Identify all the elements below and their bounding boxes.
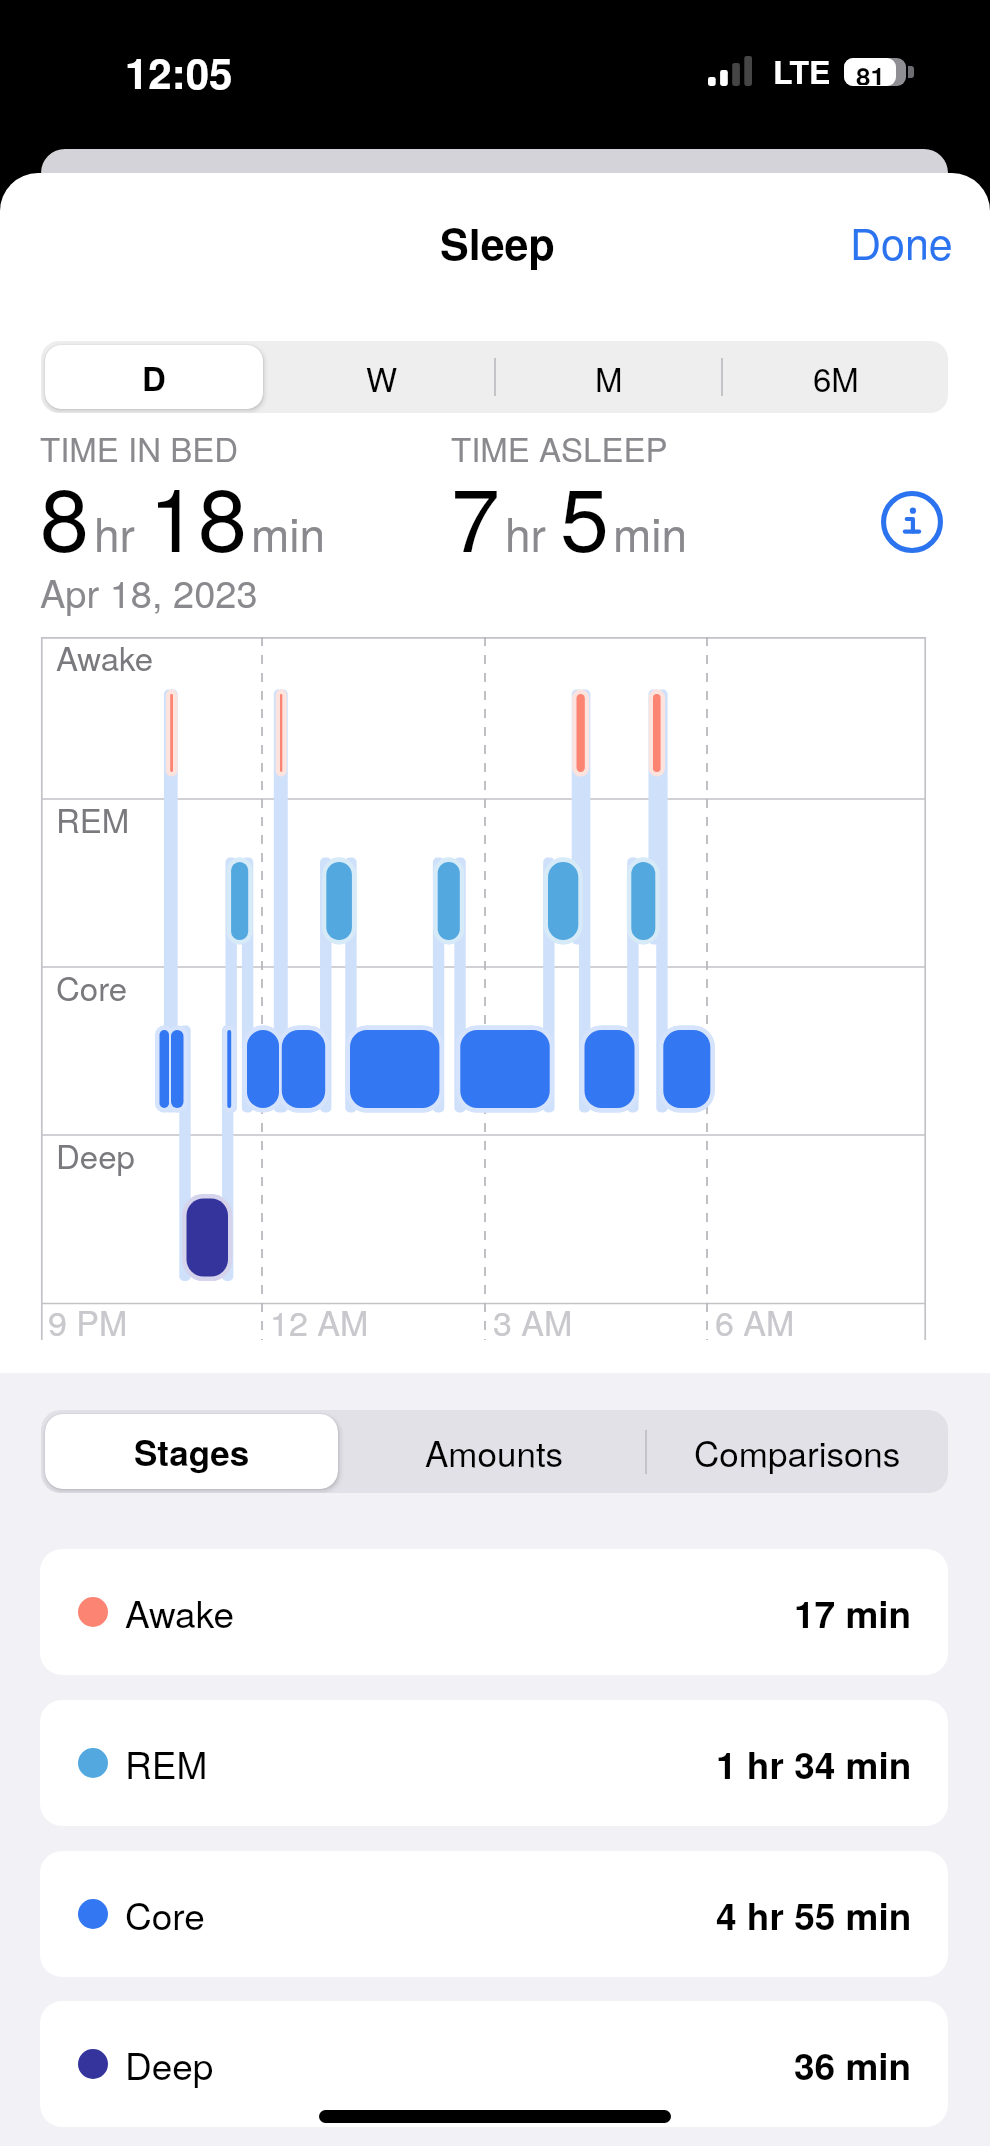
staticText: Deep [56, 1131, 135, 1178]
staticText: hr [94, 499, 135, 565]
staticText: 9 PM [48, 1297, 128, 1346]
button[interactable]: 6M [727, 345, 944, 409]
staticText: 5 [560, 451, 609, 577]
button[interactable]: D [45, 345, 263, 409]
staticText: 6M [813, 354, 859, 401]
staticText: Sleep [440, 212, 555, 274]
staticText: min [251, 499, 326, 565]
staticText: 3 AM [493, 1297, 573, 1346]
staticText: W [366, 354, 398, 401]
staticText: TIME IN BED [40, 424, 239, 471]
button[interactable]: W [273, 345, 490, 409]
staticText: 8 [40, 451, 89, 577]
staticText: 36 min [794, 2038, 912, 2091]
staticText: M [595, 354, 623, 401]
staticText: D [142, 354, 166, 401]
button[interactable]: Information [881, 491, 943, 553]
staticText: 12:05 [125, 42, 233, 102]
staticText: Core [125, 1888, 205, 1941]
staticText: 12 AM [270, 1297, 369, 1346]
staticText: Comparisons [694, 1427, 901, 1477]
staticText: 17 min [794, 1586, 912, 1639]
staticText: 4 hr 55 min [716, 1888, 912, 1941]
staticText: Core [56, 963, 128, 1010]
button[interactable]: Awake [40, 1549, 948, 1675]
button[interactable]: Deep [40, 2001, 948, 2127]
staticText: 81 [856, 58, 885, 85]
staticText: Stages [134, 1427, 250, 1477]
staticText: 1 hr 34 min [716, 1737, 912, 1790]
staticText: 18 [149, 451, 247, 577]
staticText: min [613, 499, 688, 565]
button[interactable]: Comparisons [651, 1414, 944, 1489]
staticText: LTE [773, 48, 831, 94]
staticText: 6 AM [715, 1297, 795, 1346]
button[interactable]: M [500, 345, 717, 409]
staticText: Done [850, 211, 953, 273]
staticText: Apr 18, 2023 [40, 564, 258, 618]
staticText: Awake [125, 1586, 235, 1639]
button[interactable]: Core [40, 1851, 948, 1977]
staticText: Deep [125, 2038, 214, 2091]
staticText: TIME ASLEEP [451, 424, 668, 471]
staticText: 7 [451, 451, 500, 577]
staticText: REM [56, 795, 130, 842]
button[interactable]: Amounts [348, 1414, 641, 1489]
staticText: Awake [56, 633, 154, 680]
staticText: Amounts [425, 1427, 564, 1477]
staticText: REM [125, 1737, 208, 1790]
staticText: hr [505, 499, 546, 565]
button[interactable]: Done [818, 196, 980, 288]
button[interactable]: Stages [45, 1414, 338, 1489]
button[interactable]: REM [40, 1700, 948, 1826]
